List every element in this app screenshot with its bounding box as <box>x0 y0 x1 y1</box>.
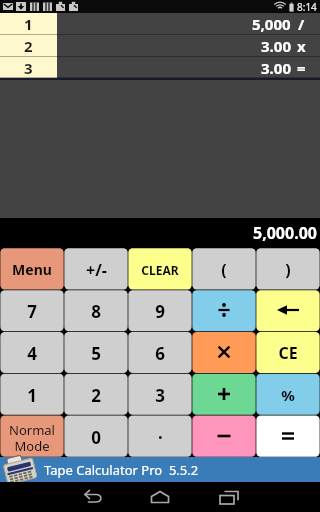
button[interactable]: 8 <box>64 289 128 331</box>
staticText: 5,000.00 <box>253 222 317 244</box>
staticText: 3 <box>24 58 33 78</box>
button[interactable]: ) <box>256 248 320 289</box>
staticText: / <box>298 14 305 34</box>
staticText: Tape Calculator Pro 5.5.2 <box>44 461 199 479</box>
staticText: 6 <box>155 342 165 365</box>
staticText: Normal Mode <box>9 421 55 454</box>
staticText: 5,000 <box>252 14 291 34</box>
staticText: 9 <box>155 300 165 323</box>
button[interactable]: ( <box>192 248 256 289</box>
button[interactable]: 2 <box>64 373 128 415</box>
button[interactable]: Backspace <box>256 289 320 331</box>
button[interactable]: 7 <box>0 289 64 331</box>
staticText: Menu <box>12 260 52 279</box>
staticText: 2 <box>24 36 33 56</box>
button[interactable]: Plus <box>192 373 256 415</box>
staticText: = <box>297 58 306 78</box>
button[interactable]: 2 <box>0 35 320 57</box>
button[interactable]: 9 <box>128 289 192 331</box>
button[interactable]: · <box>128 415 192 457</box>
staticText: 4 <box>27 342 37 365</box>
staticText: · <box>158 426 163 449</box>
staticText: 3.00 <box>261 36 291 56</box>
staticText: 1 <box>27 384 37 407</box>
button[interactable]: Minus <box>192 415 256 457</box>
staticText: 5 <box>91 342 101 365</box>
staticText: 0 <box>91 426 101 449</box>
button[interactable]: 1 <box>0 373 64 415</box>
button[interactable]: Recents <box>201 482 257 512</box>
staticText: x <box>297 36 306 56</box>
staticText: 2 <box>91 384 101 407</box>
button[interactable]: 3 <box>0 57 320 78</box>
button[interactable]: Home <box>132 482 188 512</box>
button[interactable]: Equals <box>256 415 320 457</box>
button[interactable]: Normal Mode <box>0 415 64 457</box>
button[interactable]: Divide <box>192 289 256 331</box>
staticText: 8 <box>91 300 101 323</box>
staticText: 3.00 <box>261 58 291 78</box>
staticText: 3 <box>155 384 165 407</box>
button[interactable]: Tape Calculator Pro 5.5.2 <box>0 457 320 482</box>
button[interactable]: 4 <box>0 331 64 373</box>
button[interactable]: Back <box>65 482 121 512</box>
staticText: 1 <box>24 14 33 34</box>
button[interactable]: Menu <box>0 248 64 289</box>
staticText: % <box>281 385 295 405</box>
staticText: ( <box>221 259 227 281</box>
button[interactable]: 1 <box>0 13 320 35</box>
button[interactable]: +/- <box>64 248 128 289</box>
staticText: 8:14 <box>297 0 317 13</box>
button[interactable]: CLEAR <box>128 248 192 289</box>
staticText: ) <box>285 259 291 281</box>
button[interactable]: CE <box>256 331 320 373</box>
button[interactable]: 5 <box>64 331 128 373</box>
staticText: 7 <box>27 300 37 323</box>
button[interactable]: 0 <box>64 415 128 457</box>
button[interactable]: % <box>256 373 320 415</box>
staticText: CE <box>278 342 298 364</box>
staticText: CLEAR <box>141 262 179 278</box>
staticText: +/- <box>86 259 107 281</box>
button[interactable]: 6 <box>128 331 192 373</box>
button[interactable]: 3 <box>128 373 192 415</box>
button[interactable]: Multiply <box>192 331 256 373</box>
